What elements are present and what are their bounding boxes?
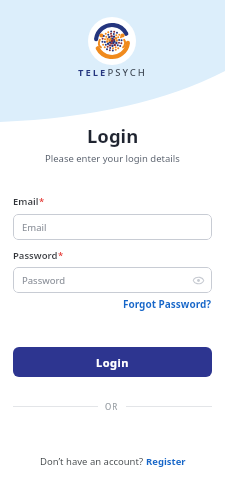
staticText: Don’t have an account? [40, 455, 146, 468]
staticText: Email [22, 221, 47, 234]
button[interactable]: Login [13, 347, 212, 377]
staticText: * [58, 249, 64, 262]
staticText: Password [13, 249, 58, 262]
staticText: Password [22, 274, 65, 287]
staticText: Please enter your login details [45, 152, 180, 165]
button[interactable]: Password [13, 267, 212, 293]
button[interactable]: Email [13, 214, 212, 240]
staticText: Login [96, 355, 129, 370]
staticText: * [39, 195, 45, 208]
staticText: Email [13, 195, 39, 208]
staticText: OR [105, 401, 119, 412]
button[interactable]: Forgot Password? [123, 297, 212, 311]
staticText: Login [87, 123, 139, 148]
button[interactable]: Register [146, 455, 186, 468]
staticText: TELEPSYCH [78, 66, 147, 79]
